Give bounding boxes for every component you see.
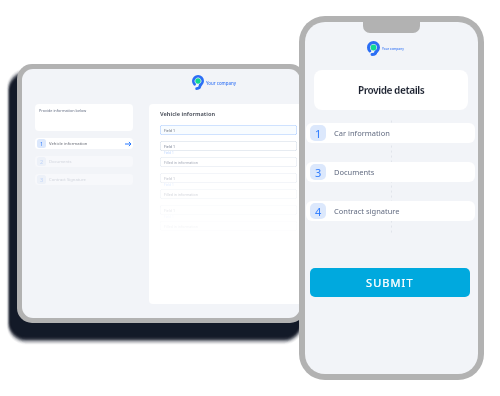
staticText: Field 1 [164,176,175,181]
staticText: 1 [315,126,322,141]
staticText: Your company [382,47,404,51]
staticText: Field 1 [164,208,175,213]
staticText: Contract Signature [49,177,131,183]
staticText: Contract signature [334,206,400,216]
other: Next [125,141,131,147]
button[interactable]: 4 [306,201,475,221]
button[interactable]: 3 [306,162,475,182]
staticText: Documents [334,167,375,177]
staticText: 3 [315,165,322,180]
staticText: SUBMIT [366,275,414,290]
staticText: Your company [206,80,237,86]
staticText: Field 1 [164,128,175,133]
button[interactable]: SUBMIT [310,268,470,297]
staticText: 4 [315,204,322,219]
staticText: 1 [40,140,44,148]
staticText: Filled in information [164,160,198,165]
staticText: Documents [49,159,131,165]
button[interactable]: 3 [35,174,133,185]
staticText: Car information [334,128,390,138]
staticText: Vehicle information [49,141,125,147]
staticText: Provide information below [39,108,87,113]
button[interactable]: 1 [35,138,133,149]
staticText: Field 1 [164,151,174,155]
staticText: 3 [40,176,44,184]
staticText: Vehicle information [160,110,216,118]
button[interactable]: 1 [306,123,475,143]
button[interactable]: 2 [35,156,133,167]
staticText: Filled in information [164,192,198,197]
staticText: Field 1 [164,144,175,149]
staticText: 2 [40,158,44,166]
staticText: Field 1 [164,183,174,187]
staticText: Provide details [358,83,425,97]
